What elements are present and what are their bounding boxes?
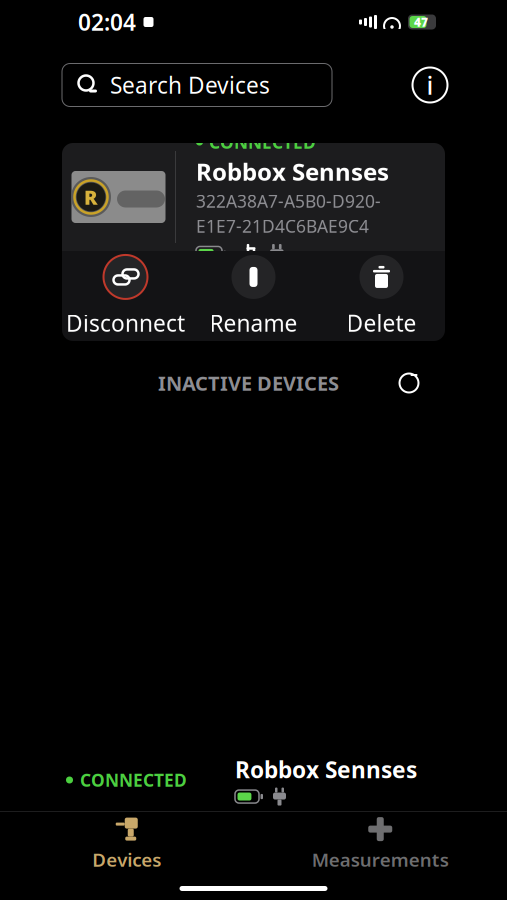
staticText: Robbox Sennses	[235, 754, 417, 784]
staticText: 47	[414, 14, 428, 30]
staticText: Delete	[346, 308, 416, 338]
staticText: i	[426, 68, 433, 102]
button[interactable]: Devices	[0, 809, 253, 878]
button[interactable]: Rename	[189, 248, 317, 344]
button[interactable]: Disconnect	[61, 248, 189, 344]
staticText: Rename	[209, 308, 297, 338]
staticText: Measurements	[312, 847, 449, 872]
staticText: Robbox Sennses	[196, 156, 389, 187]
staticText: E1E7-21D4C6BAE9C4	[196, 214, 369, 237]
button[interactable]: Information	[407, 62, 453, 108]
staticText: Disconnect	[66, 308, 185, 338]
staticText: R	[84, 184, 98, 210]
staticText: Search Devices	[110, 70, 270, 100]
staticText: CONNECTED	[209, 130, 316, 153]
staticText: Devices	[92, 847, 161, 872]
button[interactable]: Measurements	[253, 809, 507, 878]
staticText: CONNECTED	[80, 768, 187, 791]
staticText: 322A38A7-A5B0-D920-	[196, 189, 381, 212]
staticText: INACTIVE DEVICES	[158, 370, 339, 396]
button[interactable]: Search Devices	[62, 63, 332, 106]
staticText: 02:04	[78, 7, 136, 37]
button[interactable]: Delete	[317, 248, 445, 344]
button[interactable]: Refresh	[389, 363, 429, 403]
